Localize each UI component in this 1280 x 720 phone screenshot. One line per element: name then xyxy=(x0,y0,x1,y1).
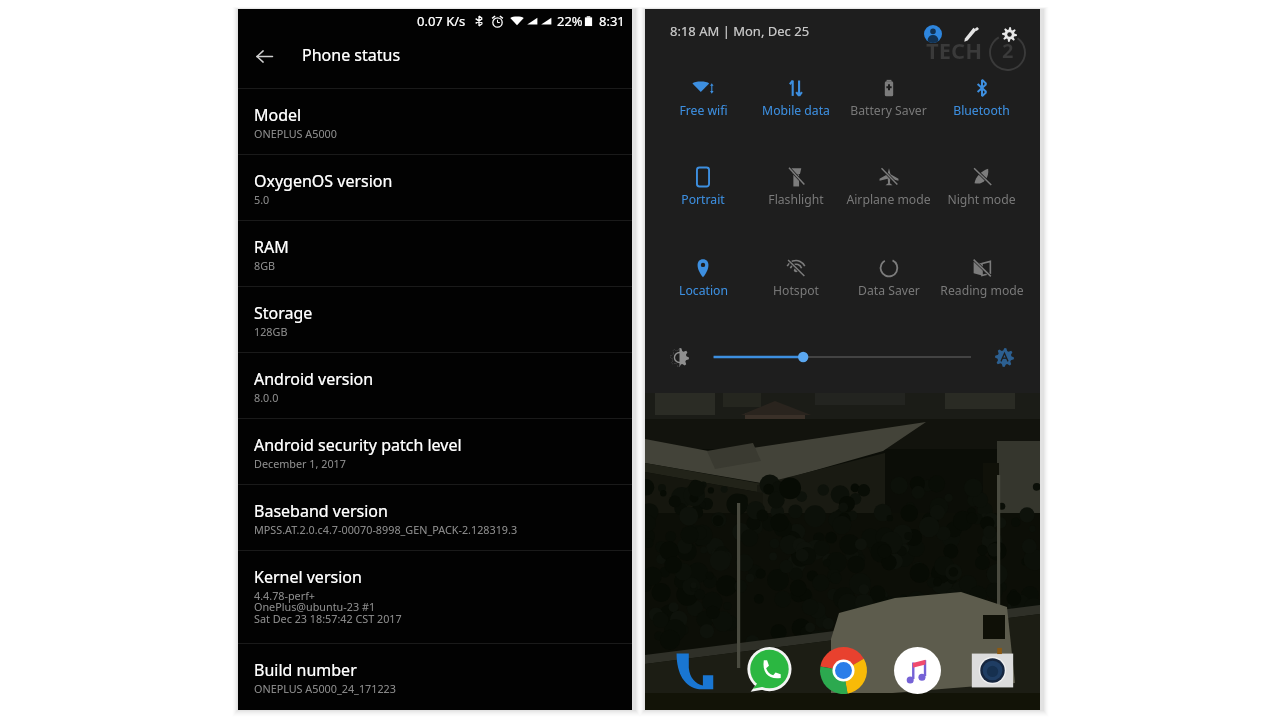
button[interactable]: Music xyxy=(892,645,942,695)
button[interactable]: Brightness xyxy=(668,346,690,368)
staticText: Kernel version xyxy=(254,566,362,588)
button[interactable]: Android version xyxy=(238,353,632,418)
staticText: Battery Saver xyxy=(850,102,927,119)
staticText: 4.4.78-perf+ OnePlus@ubuntu-23 #1 Sat De… xyxy=(254,588,402,627)
staticText: ONEPLUS A5000_24_171223 xyxy=(254,681,396,696)
button[interactable]: Auto brightness xyxy=(992,345,1016,369)
staticText: Data Saver xyxy=(858,282,920,299)
button[interactable]: Back xyxy=(238,33,281,88)
staticText: Night mode xyxy=(947,191,1016,208)
button[interactable]: Night mode xyxy=(935,166,1028,208)
staticText: 8:18 AM | Mon, Dec 25 xyxy=(670,22,810,40)
button[interactable]: Chrome xyxy=(818,645,868,695)
staticText: Reading mode xyxy=(940,282,1024,299)
staticText: 8GB xyxy=(254,258,276,273)
button[interactable]: Back xyxy=(238,33,632,88)
staticText: Mobile data xyxy=(762,102,830,119)
staticText: Bluetooth xyxy=(953,102,1010,119)
button[interactable]: Model xyxy=(238,89,632,154)
staticText: Android security patch level xyxy=(254,434,462,456)
staticText: 8.0.0 xyxy=(254,390,279,405)
button[interactable]: Battery Saver xyxy=(842,77,935,119)
staticText: December 1, 2017 xyxy=(254,456,346,471)
button[interactable]: Phone xyxy=(668,645,718,695)
button[interactable]: Edit xyxy=(958,21,984,47)
button[interactable]: Hotspot xyxy=(749,257,842,299)
staticText: Hotspot xyxy=(773,282,819,299)
staticText: Baseband version xyxy=(254,500,388,522)
staticText: MPSS.AT.2.0.c4.7-00070-8998_GEN_PACK-2.1… xyxy=(254,522,518,537)
staticText: 8:31 xyxy=(599,12,625,30)
button[interactable]: Reading mode xyxy=(935,257,1028,299)
button[interactable]: Android security patch level xyxy=(238,419,632,484)
staticText: Storage xyxy=(254,302,313,324)
button[interactable]: Kernel version xyxy=(238,551,632,643)
staticText: Flashlight xyxy=(768,191,824,208)
button[interactable]: Free wifi xyxy=(657,77,749,119)
staticText: Android version xyxy=(254,368,374,390)
button[interactable] xyxy=(707,349,978,365)
button[interactable]: Flashlight xyxy=(749,166,842,208)
button[interactable]: Airplane mode xyxy=(842,166,935,208)
staticText: 0.07 K/s xyxy=(417,12,466,30)
staticText: RAM xyxy=(254,236,289,258)
staticText: Free wifi xyxy=(679,102,728,119)
button[interactable]: Portrait xyxy=(657,166,749,208)
button[interactable]: RAM xyxy=(238,221,632,286)
staticText: 22% xyxy=(557,12,583,30)
staticText: Airplane mode xyxy=(846,191,931,208)
staticText: Location xyxy=(679,282,728,299)
button[interactable]: Bluetooth xyxy=(935,77,1028,119)
staticText: Build number xyxy=(254,659,357,681)
button[interactable]: User account xyxy=(920,21,946,47)
button[interactable]: Camera xyxy=(967,645,1017,695)
button[interactable]: OxygenOS version xyxy=(238,155,632,220)
staticText: 128GB xyxy=(254,324,288,339)
button[interactable]: Storage xyxy=(238,287,632,352)
button[interactable]: Settings xyxy=(996,21,1022,47)
button[interactable]: Mobile data xyxy=(749,77,842,119)
button[interactable]: Baseband version xyxy=(238,485,632,550)
staticText: OxygenOS version xyxy=(254,170,393,192)
button[interactable]: Location xyxy=(657,257,749,299)
staticText: Model xyxy=(254,104,302,126)
staticText: Portrait xyxy=(681,191,725,208)
button[interactable]: Data Saver xyxy=(842,257,935,299)
button[interactable]: WhatsApp xyxy=(743,645,793,695)
staticText: 2 xyxy=(1002,37,1014,64)
staticText: 5.0 xyxy=(254,192,270,207)
staticText: ONEPLUS A5000 xyxy=(254,126,337,141)
staticText: Phone status xyxy=(302,44,401,66)
staticText: TECH xyxy=(926,35,982,65)
button[interactable]: Build number xyxy=(238,644,632,709)
